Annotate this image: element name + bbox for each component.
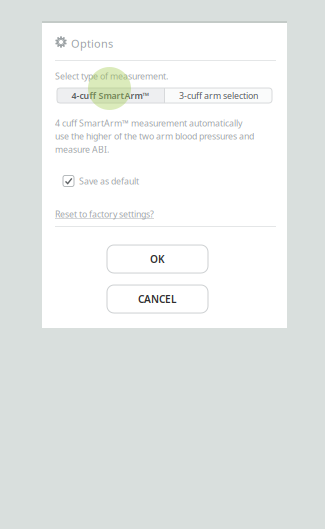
staticText: Reset to factory settings? xyxy=(55,208,154,220)
staticText: Select type of measurement. xyxy=(55,70,168,82)
button[interactable]: CANCEL xyxy=(107,285,208,313)
staticText: CANCEL xyxy=(138,292,177,306)
button[interactable]: Reset to factory settings? xyxy=(55,208,154,220)
staticText: 3-cuff arm selection xyxy=(179,89,258,101)
button[interactable]: 4-cuff SmartArm™ xyxy=(57,88,164,103)
staticText: 4-cuff SmartArm™ xyxy=(71,89,149,101)
staticText: measure ABI. xyxy=(55,143,109,155)
staticText: Save as default xyxy=(79,175,139,187)
staticText: OK xyxy=(150,252,165,266)
button[interactable]: 3-cuff arm selection xyxy=(165,88,272,103)
staticText: use the higher of the two arm blood pres… xyxy=(55,130,254,142)
staticText: Options xyxy=(71,36,113,51)
staticText: 4 cuff SmartArm™ measurement automatical… xyxy=(55,117,242,129)
button[interactable]: OK xyxy=(107,245,208,273)
button[interactable]: Save as default xyxy=(63,175,139,187)
